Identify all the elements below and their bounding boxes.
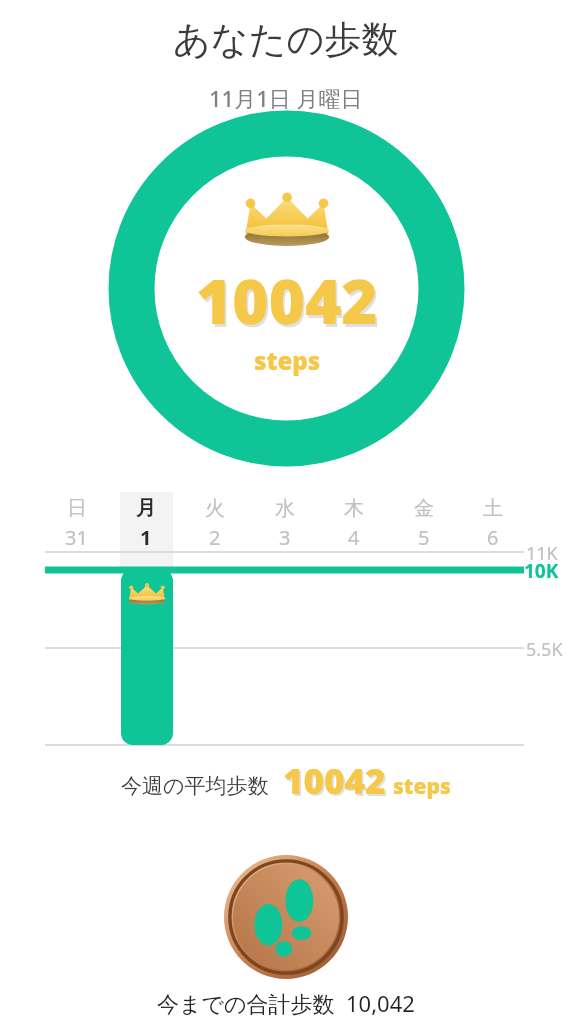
button[interactable]: 土 bbox=[467, 496, 519, 554]
staticText: 3 bbox=[279, 524, 291, 551]
button[interactable]: Total steps medal bbox=[224, 855, 348, 979]
button[interactable] bbox=[121, 569, 173, 745]
staticText: 木 bbox=[344, 496, 364, 521]
staticText: 日 bbox=[67, 496, 87, 521]
staticText: 今週の平均歩数 bbox=[121, 773, 269, 799]
button[interactable]: 水 bbox=[259, 496, 311, 554]
staticText: 今までの合計歩数 10,042 bbox=[157, 988, 415, 1018]
staticText: steps bbox=[254, 344, 321, 377]
staticText: 10042 bbox=[198, 261, 380, 345]
button[interactable]: 木 bbox=[328, 496, 380, 554]
staticText: 10042 bbox=[285, 759, 388, 807]
staticText: 11月1日 月曜日 bbox=[209, 83, 363, 113]
staticText: 10K bbox=[524, 558, 559, 584]
staticText: 月 bbox=[136, 496, 156, 521]
staticText: 土 bbox=[483, 496, 503, 521]
staticText: 水 bbox=[275, 496, 295, 521]
staticText: 2 bbox=[209, 524, 221, 551]
staticText: 金 bbox=[414, 496, 434, 521]
staticText: 5.5K bbox=[526, 637, 563, 662]
staticText: 10042 bbox=[196, 258, 378, 342]
staticText: 11K bbox=[526, 541, 558, 566]
staticText: 4 bbox=[348, 524, 360, 551]
staticText: 1 bbox=[140, 524, 152, 551]
button[interactable]: 今週の平均歩数 bbox=[0, 757, 571, 805]
staticText: steps bbox=[393, 772, 451, 801]
staticText: 火 bbox=[205, 496, 225, 521]
button[interactable]: 日 bbox=[50, 496, 102, 554]
staticText: 5 bbox=[418, 524, 430, 551]
staticText: 31 bbox=[65, 524, 88, 551]
button[interactable]: 火 bbox=[189, 496, 241, 554]
staticText: 6 bbox=[487, 524, 499, 551]
button[interactable]: 金 bbox=[398, 496, 450, 554]
button[interactable]: 10042 bbox=[108, 110, 465, 467]
button[interactable]: 月 bbox=[120, 496, 172, 554]
staticText: 10042 bbox=[283, 757, 386, 805]
staticText: あなたの歩数 bbox=[173, 16, 399, 63]
